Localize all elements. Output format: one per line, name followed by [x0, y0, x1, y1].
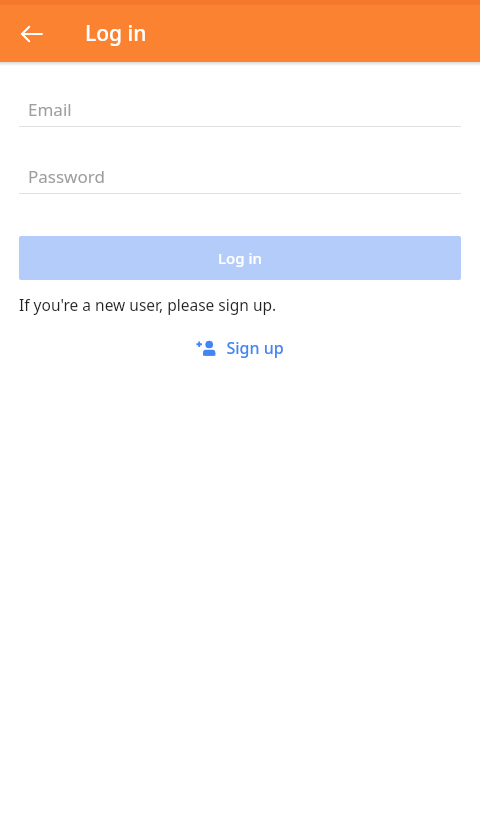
- staticText: If you're a new user, please sign up.: [19, 294, 277, 315]
- button[interactable]: Sign up: [190, 333, 290, 363]
- button[interactable]: Password: [19, 159, 461, 193]
- button[interactable]: Back: [8, 10, 56, 58]
- staticText: Password: [28, 165, 105, 188]
- staticText: Email: [28, 98, 72, 121]
- button[interactable]: Email: [19, 92, 461, 126]
- button[interactable]: Log in: [19, 236, 461, 280]
- staticText: Log in: [218, 248, 262, 268]
- staticText: Log in: [85, 19, 147, 48]
- staticText: Sign up: [226, 337, 284, 359]
